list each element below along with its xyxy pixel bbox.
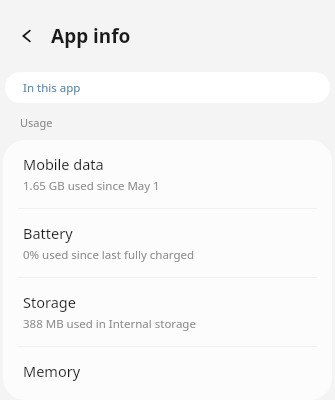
button[interactable]: Memory xyxy=(3,347,332,400)
staticText: Memory xyxy=(23,361,81,381)
button[interactable]: Battery xyxy=(3,209,332,277)
staticText: App info xyxy=(51,23,131,49)
button[interactable]: Storage xyxy=(3,278,332,346)
staticText: In this app xyxy=(23,80,81,96)
staticText: 0% used since last fully charged xyxy=(23,247,195,263)
button[interactable]: In this app xyxy=(5,72,330,103)
staticText: Storage xyxy=(23,292,76,312)
staticText: Mobile data xyxy=(23,154,104,174)
staticText: Battery xyxy=(23,223,73,243)
button[interactable]: Mobile data xyxy=(3,140,332,208)
staticText: Usage xyxy=(20,115,53,130)
button[interactable]: Back xyxy=(12,21,42,51)
staticText: 1.65 GB used since May 1 xyxy=(23,178,160,194)
staticText: 388 MB used in Internal storage xyxy=(23,316,196,332)
